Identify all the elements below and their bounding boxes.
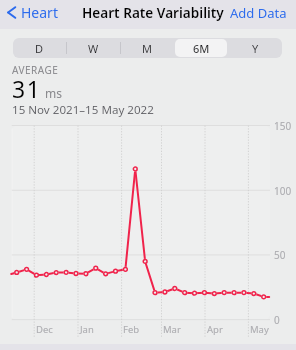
button[interactable]: 6M [174,38,228,58]
staticText: 15 Nov 2021–15 May 2022 [12,102,154,118]
button[interactable]: Heart [0,0,66,26]
staticText: ms [45,85,62,101]
button[interactable]: M [120,38,174,58]
staticText: Feb [123,323,140,336]
staticText: 0 [274,313,280,327]
staticText: W [88,41,99,56]
button[interactable]: Y [228,38,282,58]
staticText: 100 [274,184,292,198]
staticText: Mar [163,323,181,336]
staticText: 150 [274,119,292,133]
staticText: Heart [21,3,58,22]
staticText: 50 [274,248,286,262]
staticText: Apr [207,323,223,336]
staticText: Dec [36,323,53,336]
staticText: Y [252,41,259,56]
staticText: D [35,41,44,56]
staticText: 31 [12,73,42,104]
button[interactable]: D [13,38,66,58]
button[interactable]: W [66,38,120,58]
staticText: Heart Rate Variability [82,3,224,22]
button[interactable]: Add Data [222,0,296,26]
staticText: M [142,41,152,56]
staticText: May [250,323,269,336]
staticText: 6M [193,41,210,56]
staticText: Jan [80,323,94,336]
staticText: AVERAGE [12,63,59,77]
